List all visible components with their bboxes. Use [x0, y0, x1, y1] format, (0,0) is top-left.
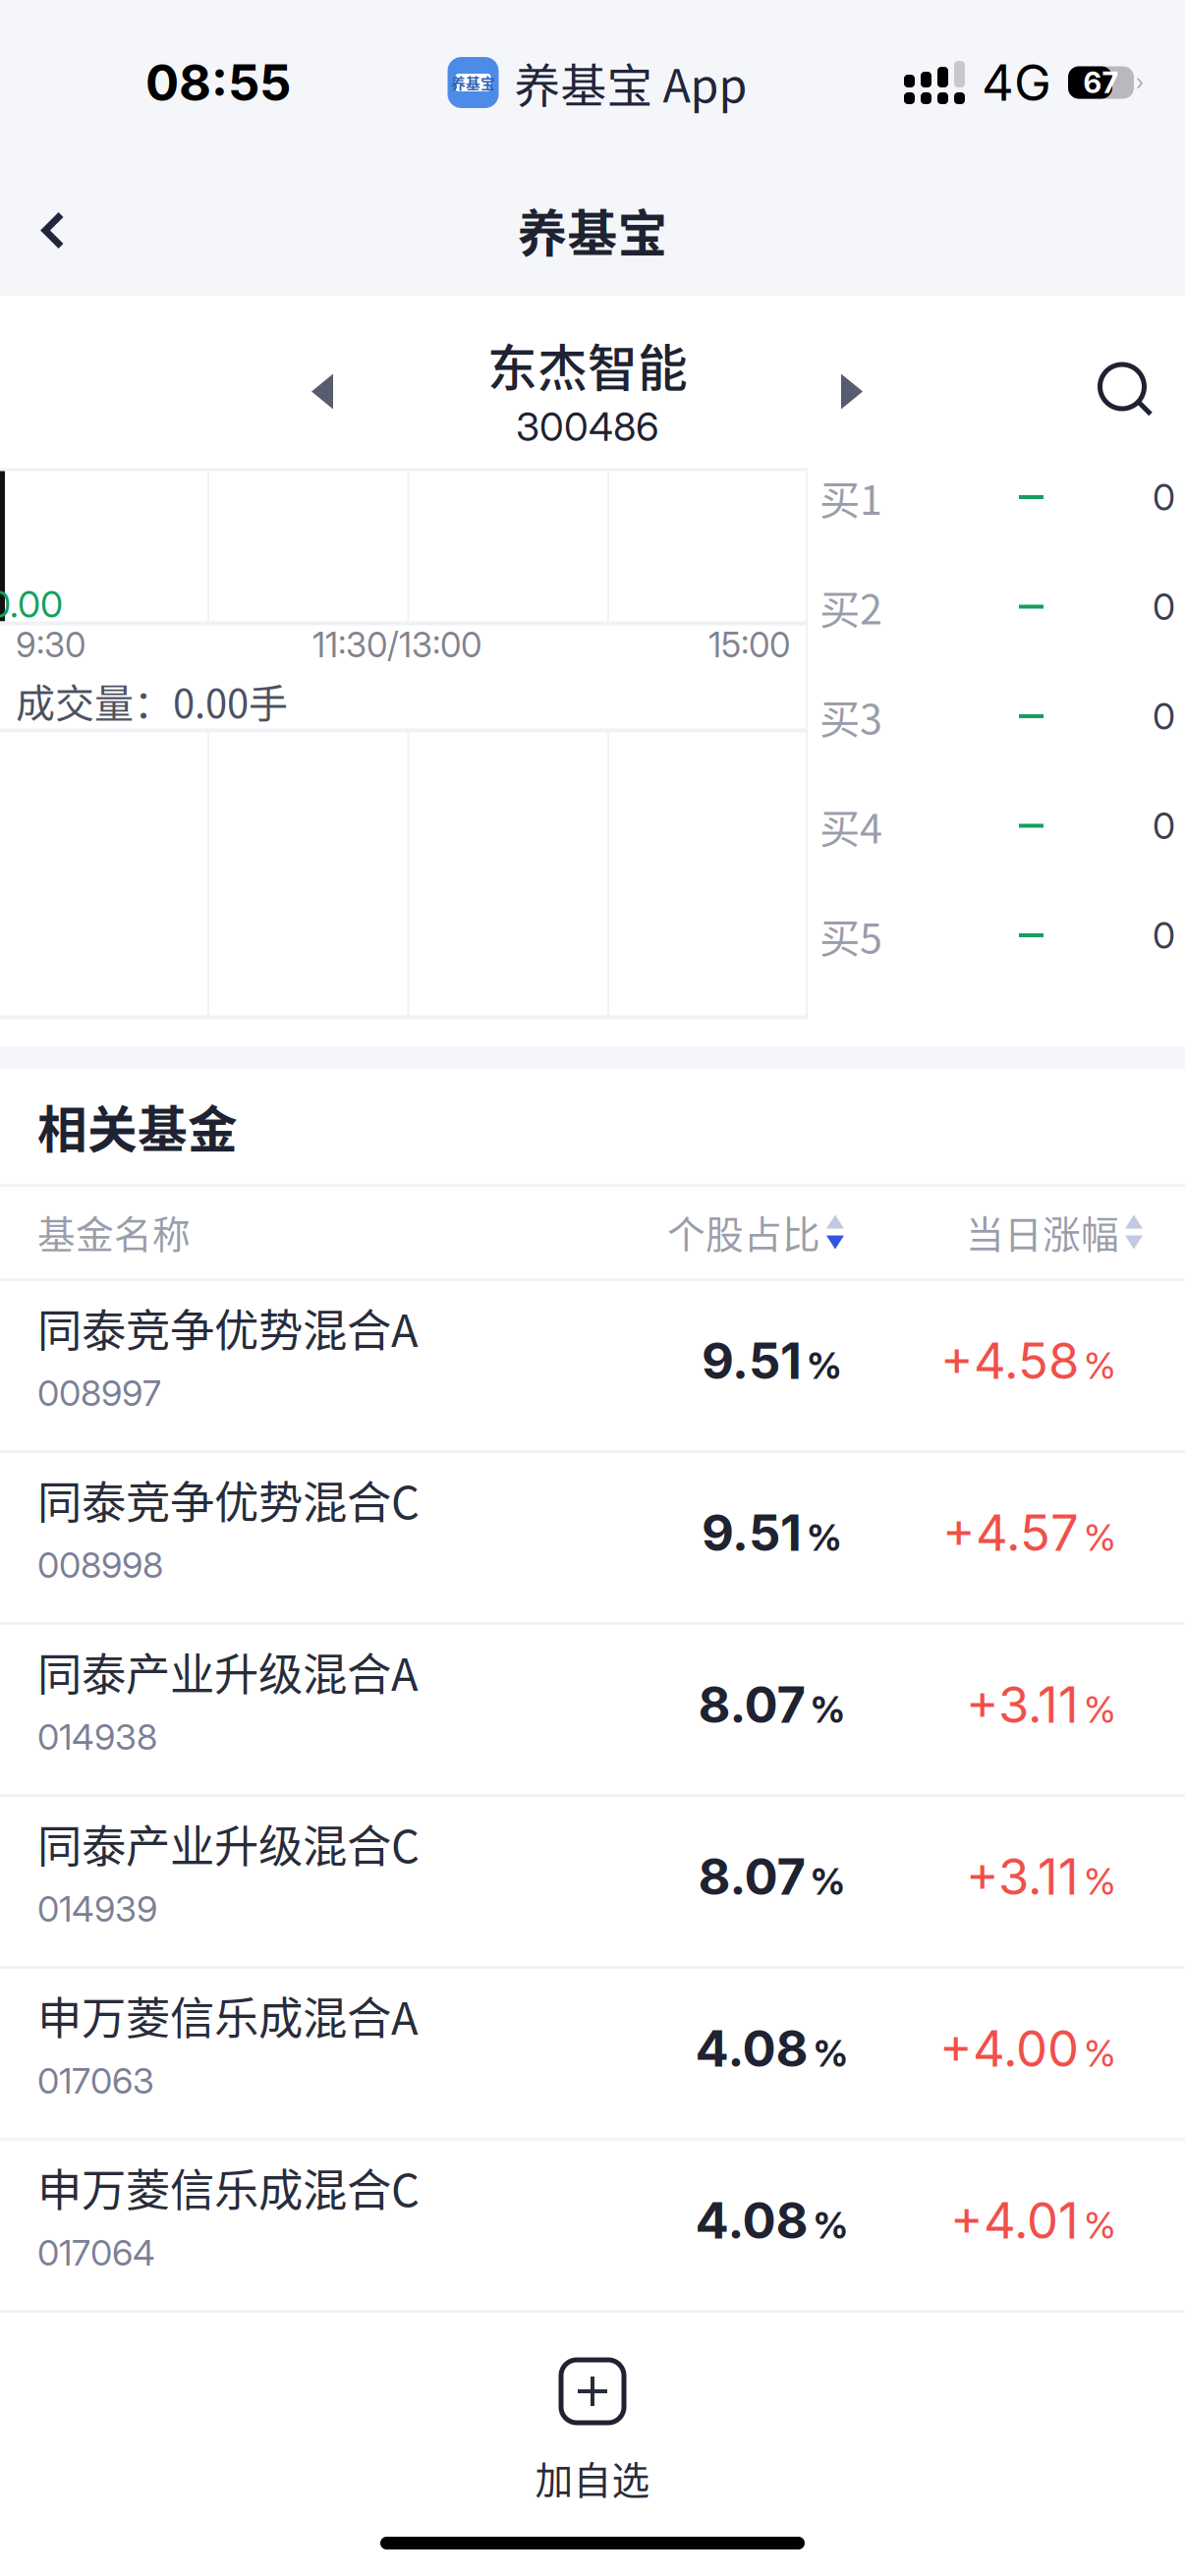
button[interactable]: 同泰产业升级混合C	[0, 1797, 1185, 1966]
staticText: +4.00	[939, 2018, 1079, 2078]
staticText: 养基宝	[517, 194, 668, 266]
staticText: 9.51	[702, 1502, 802, 1563]
staticText: 008997	[37, 1372, 161, 1414]
button[interactable]: 申万菱信乐成混合A	[0, 1969, 1185, 2138]
staticText: 014939	[37, 1887, 157, 1930]
button[interactable]: 申万菱信乐成混合C	[0, 2141, 1185, 2310]
staticText: +4.58	[940, 1331, 1079, 1391]
staticText: 申万菱信乐成混合C	[37, 2155, 420, 2219]
staticText: 申万菱信乐成混合A	[37, 1983, 419, 2047]
staticText: +4.01	[950, 2190, 1079, 2250]
staticText: 11:30/13:00	[312, 624, 481, 666]
staticText: +4.57	[942, 1502, 1079, 1563]
staticText: 67	[1083, 65, 1119, 100]
staticText: +3.11	[966, 1674, 1079, 1735]
button[interactable]: 搜索	[1081, 345, 1169, 434]
staticText: 4G	[982, 52, 1051, 113]
button[interactable]: 上一只	[285, 348, 360, 435]
button[interactable]: 个股占比	[667, 1186, 844, 1278]
button[interactable]: 返回	[0, 177, 106, 283]
staticText: 个股占比	[667, 1204, 820, 1260]
staticText: 0	[1153, 475, 1175, 519]
staticText: 同泰竞争优势混合A	[37, 1295, 419, 1360]
staticText: 9:30	[16, 624, 85, 666]
staticText: %	[1084, 1687, 1116, 1732]
staticText: 8.07	[698, 1846, 805, 1907]
staticText: %	[1084, 2203, 1116, 2247]
staticText: 东杰智能	[487, 329, 688, 401]
staticText: 0	[1153, 694, 1175, 738]
staticText: 15:00	[708, 624, 790, 666]
staticText: 4.08	[695, 2018, 808, 2078]
staticText: 4.08	[695, 2190, 808, 2250]
staticText: 300486	[516, 403, 659, 450]
button[interactable]: 下一只	[815, 348, 889, 435]
staticText: 同泰产业升级混合C	[37, 1811, 420, 1876]
staticText: 养基宝	[451, 72, 495, 93]
staticText: ›	[1136, 70, 1144, 95]
staticText: 养基宝 App	[514, 49, 747, 116]
staticText: 加自选	[535, 2450, 650, 2505]
staticText: 买3	[819, 687, 882, 746]
staticText: %	[807, 1343, 842, 1388]
staticText: 买2	[819, 577, 882, 636]
staticText: +3.11	[966, 1846, 1079, 1907]
staticText: 基金名称	[37, 1204, 191, 1260]
staticText: 0	[1153, 804, 1175, 848]
staticText: 017064	[37, 2231, 155, 2274]
staticText: %	[1084, 2031, 1116, 2075]
button[interactable]: 同泰产业升级混合A	[0, 1625, 1185, 1794]
staticText: 当日涨幅	[966, 1204, 1119, 1260]
button[interactable]: 同泰竞争优势混合C	[0, 1453, 1185, 1622]
staticText: 017063	[37, 2059, 154, 2102]
staticText: %	[1084, 1859, 1116, 1904]
staticText: 9.51	[702, 1331, 802, 1391]
staticText: 买4	[819, 796, 882, 855]
staticText: 同泰竞争优势混合C	[37, 1467, 420, 1532]
staticText: 相关基金	[37, 1090, 238, 1162]
staticText: 成交量：0.00手	[16, 672, 288, 729]
staticText: %	[1084, 1515, 1116, 1560]
staticText: 8.07	[698, 1674, 805, 1735]
button[interactable]: 加自选	[445, 2313, 740, 2505]
staticText: %	[810, 1687, 846, 1732]
staticText: 008998	[37, 1543, 163, 1586]
staticText: 0	[1153, 584, 1175, 629]
staticText: 0	[1153, 913, 1175, 958]
button[interactable]: 当日涨幅	[966, 1186, 1143, 1278]
staticText: 同泰产业升级混合A	[37, 1639, 419, 1704]
staticText: %	[813, 2203, 848, 2247]
staticText: %	[813, 2031, 848, 2075]
staticText: %	[1084, 1343, 1116, 1388]
staticText: 08:55	[145, 52, 291, 113]
staticText: 买1	[819, 468, 882, 527]
staticText: %	[810, 1859, 846, 1904]
staticText: %	[807, 1515, 842, 1560]
staticText: 0.00	[0, 582, 63, 626]
button[interactable]: 同泰竞争优势混合A	[0, 1281, 1185, 1450]
staticText: 买5	[819, 906, 882, 965]
staticText: 014938	[37, 1715, 157, 1758]
